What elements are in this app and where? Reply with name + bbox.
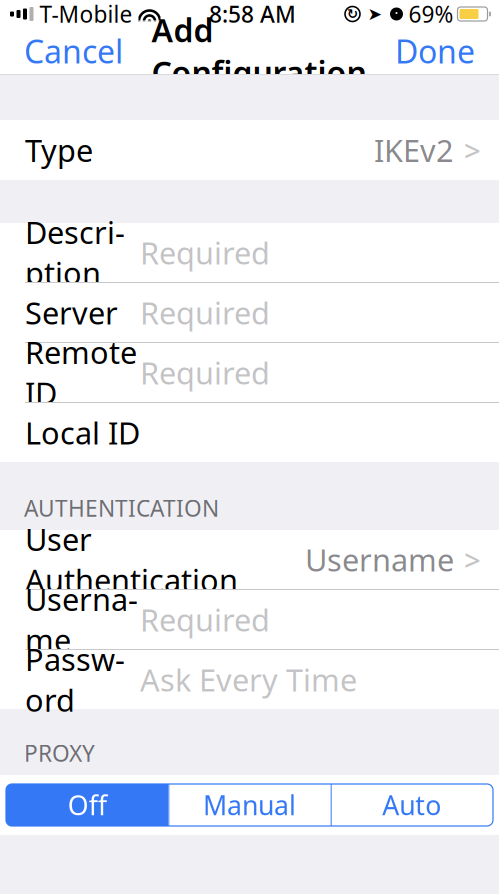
staticText: User Authentication bbox=[25, 519, 238, 600]
staticText: Cancel bbox=[24, 30, 123, 72]
staticText: > bbox=[464, 540, 481, 579]
staticText: Required bbox=[140, 352, 270, 393]
button[interactable]: User Authentication bbox=[0, 530, 499, 589]
staticText: Remote ID bbox=[25, 332, 137, 413]
staticText: PROXY bbox=[24, 738, 95, 768]
staticText: Off bbox=[68, 787, 107, 823]
staticText: Required bbox=[140, 292, 270, 333]
button[interactable]: Type bbox=[0, 120, 499, 180]
staticText: Done bbox=[395, 30, 475, 72]
staticText: Password bbox=[25, 639, 125, 720]
button[interactable]: Done bbox=[371, 28, 499, 74]
button[interactable]: Off bbox=[6, 784, 168, 826]
button[interactable]: Cancel bbox=[0, 28, 147, 74]
staticText: Username bbox=[305, 539, 454, 580]
staticText: 8:58 AM bbox=[209, 0, 296, 29]
staticText: Add Configuration bbox=[151, 8, 366, 93]
staticText: T-Mobile bbox=[39, 0, 132, 29]
staticText: AUTHENTICATION bbox=[24, 493, 219, 523]
staticText: Required bbox=[140, 599, 270, 640]
button[interactable]: Manual bbox=[168, 784, 331, 826]
button[interactable]: Auto bbox=[331, 784, 493, 826]
staticText: Username bbox=[25, 579, 138, 660]
staticText: Server bbox=[25, 292, 118, 333]
staticText: IKEv2 bbox=[374, 130, 454, 170]
staticText: ↻ bbox=[347, 6, 358, 21]
staticText: Ask Every Time bbox=[140, 659, 357, 700]
staticText: ➤ bbox=[367, 4, 382, 24]
staticText: Required bbox=[140, 232, 270, 273]
staticText: Manual bbox=[203, 787, 296, 823]
staticText: Description bbox=[25, 212, 125, 293]
staticText: Auto bbox=[382, 787, 441, 823]
staticText: Local ID bbox=[25, 412, 140, 453]
staticText: > bbox=[464, 130, 481, 169]
staticText: Type bbox=[25, 130, 93, 170]
staticText: 69% bbox=[408, 0, 453, 29]
